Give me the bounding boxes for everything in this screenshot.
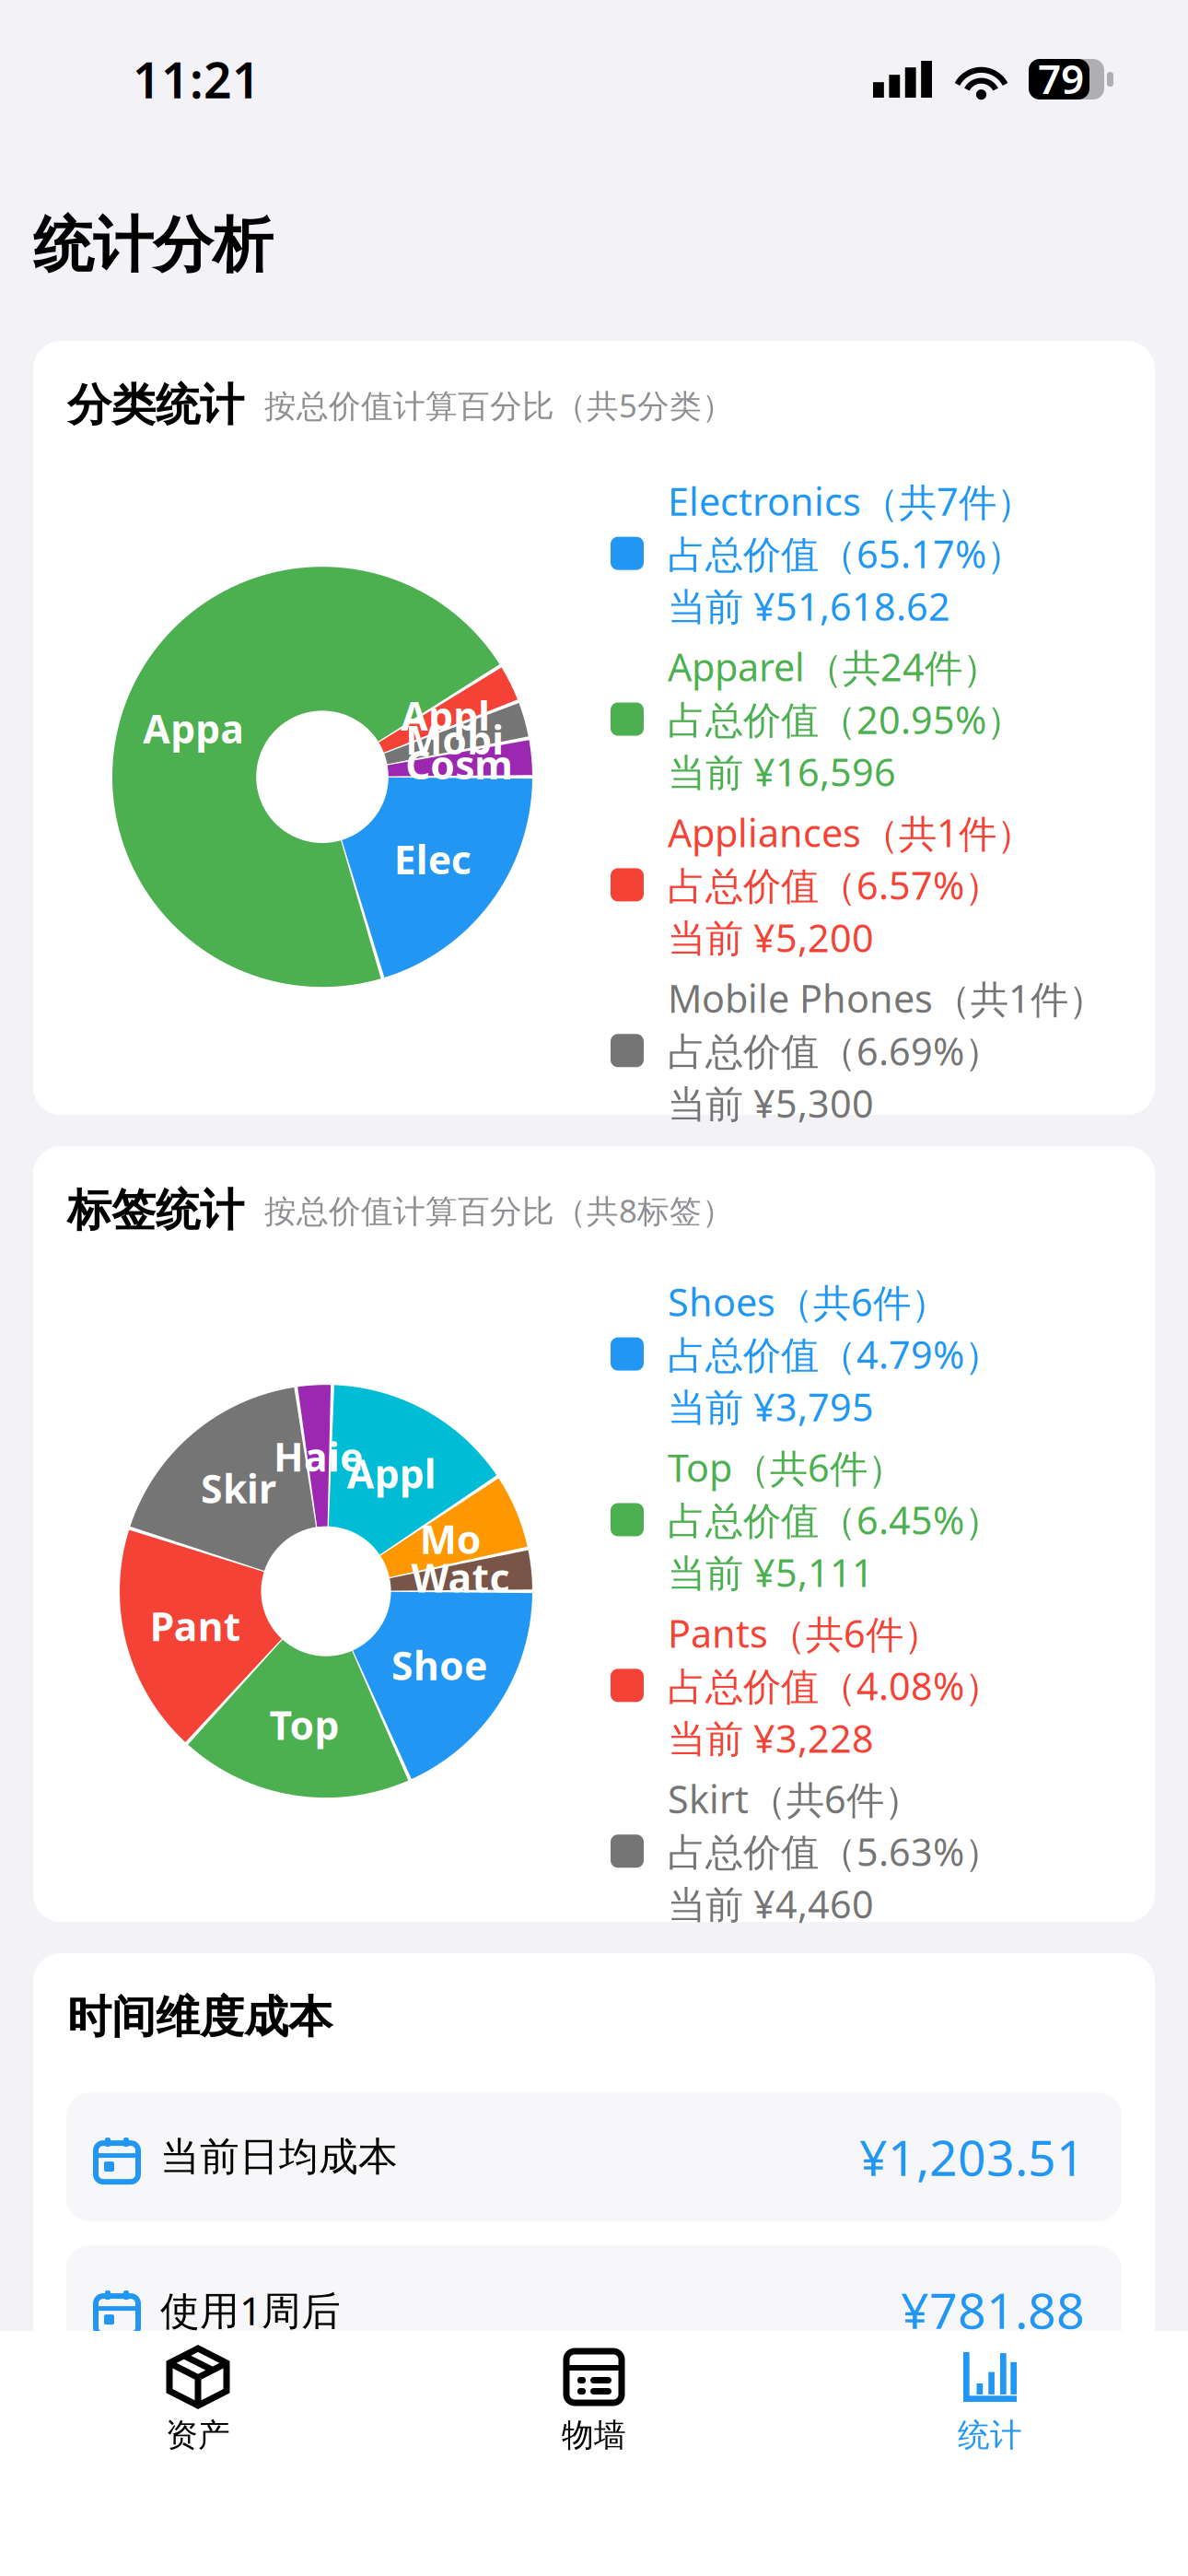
- staticText: Skirt（共6件）: [668, 1773, 922, 1824]
- staticText: 标签统计: [67, 1183, 244, 1238]
- staticText: 时间维度成本: [67, 1990, 332, 2045]
- staticText: 当前 ¥5,111: [668, 1547, 874, 1597]
- staticText: 分类统计: [67, 378, 244, 432]
- staticText: Mobi: [405, 713, 504, 765]
- staticText: 资产: [166, 2416, 230, 2455]
- staticText: 当前 ¥51,618.62: [668, 581, 950, 631]
- staticText: 当前 ¥5,300: [668, 1078, 874, 1128]
- staticText: 当前 ¥3,228: [668, 1713, 874, 1763]
- staticText: Mo: [420, 1513, 481, 1565]
- staticText: 统计分析: [33, 208, 273, 282]
- staticText: Appl: [401, 689, 490, 742]
- staticText: Cosm: [405, 738, 513, 790]
- staticText: Apparel（共24件）: [668, 641, 1000, 692]
- staticText: 当前日均成本: [160, 2133, 398, 2181]
- staticText: Appl: [347, 1447, 436, 1499]
- staticText: Elec: [394, 833, 471, 885]
- button[interactable]: 当前日均成本: [66, 2092, 1122, 2221]
- staticText: ¥781.88: [901, 2277, 1085, 2342]
- button[interactable]: 统计: [792, 2346, 1188, 2455]
- staticText: 11:21: [133, 47, 261, 112]
- staticText: 79: [1038, 51, 1084, 105]
- staticText: Appliances（共1件）: [668, 807, 1034, 858]
- staticText: 当前 ¥16,596: [668, 746, 896, 797]
- staticText: 当前 ¥3,795: [668, 1381, 874, 1432]
- staticText: ¥1,203.51: [859, 2124, 1085, 2190]
- staticText: Top（共6件）: [668, 1442, 905, 1493]
- staticText: 占总价值（20.95%）: [668, 694, 1024, 745]
- staticText: Top: [269, 1699, 339, 1751]
- staticText: 按总价值计算百分比（共8标签）: [264, 1189, 734, 1232]
- staticText: 按总价值计算百分比（共5分类）: [264, 384, 734, 426]
- staticText: Shoe: [391, 1639, 487, 1691]
- staticText: 占总价值（6.45%）: [668, 1494, 1002, 1545]
- button[interactable]: 使用1周后: [66, 2245, 1122, 2374]
- staticText: Skir: [201, 1462, 276, 1514]
- staticText: 物墙: [562, 2416, 626, 2455]
- staticText: 占总价值（6.69%）: [668, 1025, 1002, 1076]
- staticText: 统计: [958, 2416, 1022, 2455]
- staticText: Watc: [411, 1551, 510, 1603]
- staticText: 占总价值（4.08%）: [668, 1660, 1002, 1711]
- staticText: Mobile Phones（共1件）: [668, 973, 1106, 1023]
- staticText: Pants（共6件）: [668, 1608, 941, 1658]
- staticText: Appa: [143, 702, 244, 754]
- staticText: Electronics（共7件）: [668, 476, 1034, 526]
- button[interactable]: 物墙: [396, 2346, 792, 2455]
- staticText: 占总价值（4.79%）: [668, 1329, 1002, 1379]
- staticText: Pant: [150, 1600, 241, 1652]
- staticText: 使用1周后: [160, 2284, 341, 2336]
- staticText: 占总价值（5.63%）: [668, 1826, 1002, 1877]
- staticText: 当前 ¥5,200: [668, 912, 874, 963]
- button[interactable]: 资产: [0, 2346, 396, 2455]
- staticText: 当前 ¥4,460: [668, 1878, 874, 1929]
- staticText: Shoes（共6件）: [668, 1276, 949, 1327]
- staticText: Haie: [274, 1430, 363, 1482]
- staticText: 占总价值（6.57%）: [668, 860, 1002, 910]
- staticText: 占总价值（65.17%）: [668, 528, 1024, 579]
